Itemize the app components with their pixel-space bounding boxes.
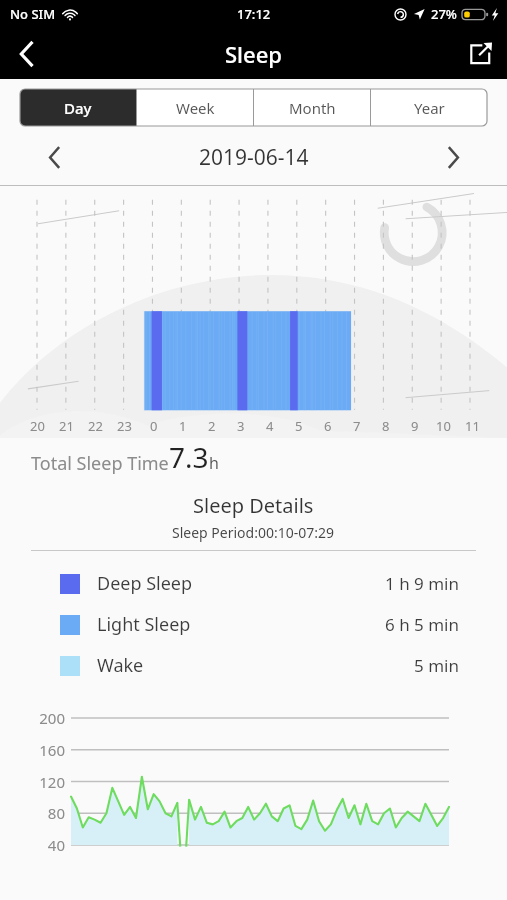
staticText: 8 [382, 417, 390, 435]
staticText: Wake [97, 653, 144, 678]
staticText: 17:12 [237, 5, 271, 23]
staticText: No SIM [10, 5, 56, 23]
staticText: 10 [436, 417, 451, 435]
staticText: Year [414, 98, 445, 118]
button[interactable]: Light Sleep [0, 604, 507, 645]
staticText: 80 [8, 803, 65, 823]
staticText: Week [176, 98, 215, 118]
staticText: 3 [237, 417, 245, 435]
staticText: 11 [465, 417, 480, 435]
staticText: 7 [353, 417, 361, 435]
button[interactable]: Previous day [36, 139, 72, 175]
staticText: 2019-06-14 [199, 143, 309, 172]
staticText: Month [289, 98, 336, 118]
button[interactable]: Week [137, 89, 253, 126]
staticText: 7.3 [169, 438, 209, 476]
staticText: Day [64, 98, 92, 118]
staticText: 200 [8, 708, 65, 728]
button[interactable]: Deep Sleep [0, 563, 507, 604]
button[interactable]: Month [254, 89, 370, 126]
button[interactable]: Wake [0, 645, 507, 686]
staticText: Deep Sleep [97, 571, 193, 596]
staticText: Total Sleep Time [31, 451, 169, 476]
staticText: 120 [8, 772, 65, 792]
staticText: 21 [59, 417, 74, 435]
staticText: 22 [88, 417, 103, 435]
button[interactable]: Share [453, 28, 507, 79]
staticText: 6 [324, 417, 332, 435]
staticText: Sleep Details [193, 492, 314, 519]
button[interactable]: Back [0, 28, 52, 79]
staticText: 23 [117, 417, 132, 435]
staticText: 1 h 9 min [384, 572, 459, 595]
staticText: 160 [8, 740, 65, 760]
staticText: 0 [150, 417, 158, 435]
staticText: 27% [431, 5, 457, 23]
staticText: h [209, 452, 219, 474]
button[interactable]: Day [20, 89, 136, 126]
staticText: Light Sleep [97, 612, 191, 637]
button[interactable]: Next day [435, 139, 471, 175]
staticText: 5 [295, 417, 303, 435]
staticText: 2 [208, 417, 216, 435]
button[interactable]: Year [371, 89, 487, 126]
staticText: 40 [8, 835, 65, 855]
staticText: 9 [411, 417, 419, 435]
staticText: 4 [266, 417, 274, 435]
staticText: Sleep [225, 39, 282, 69]
staticText: Sleep Period:00:10-07:29 [172, 523, 335, 542]
staticText: 20 [30, 417, 45, 435]
staticText: 5 min [414, 654, 459, 677]
staticText: 1 [179, 417, 187, 435]
staticText: 6 h 5 min [384, 613, 459, 636]
